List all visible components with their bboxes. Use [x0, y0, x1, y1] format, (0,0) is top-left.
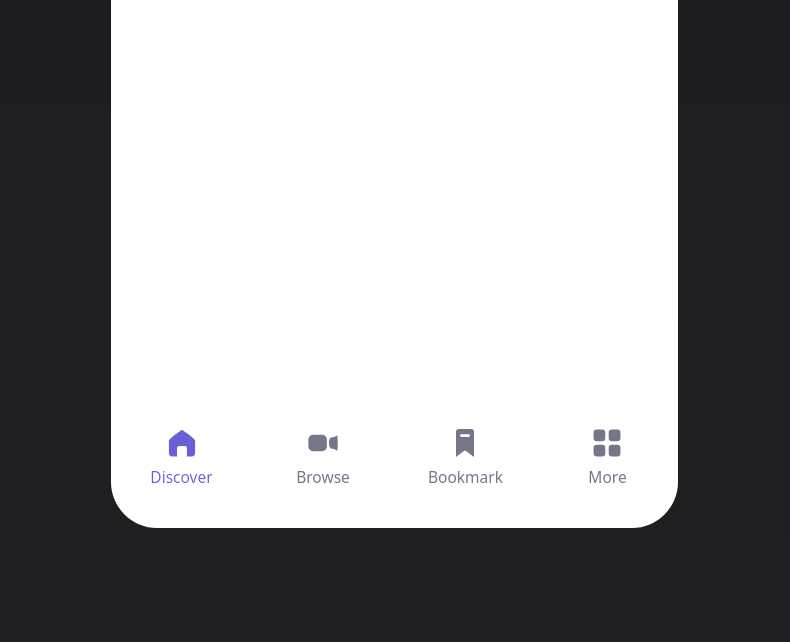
staticText: More [588, 466, 627, 487]
other: More [590, 426, 624, 460]
staticText: Bookmark [428, 466, 503, 487]
other: Bookmark [448, 426, 482, 460]
staticText: Browse [296, 466, 350, 487]
other: Browse [306, 426, 340, 460]
button[interactable]: Discover [111, 420, 252, 487]
button[interactable]: Browse [252, 420, 394, 487]
button[interactable]: Bookmark [394, 420, 536, 487]
button[interactable]: More [536, 420, 678, 487]
other: Discover [165, 426, 199, 460]
staticText: Discover [150, 466, 213, 487]
